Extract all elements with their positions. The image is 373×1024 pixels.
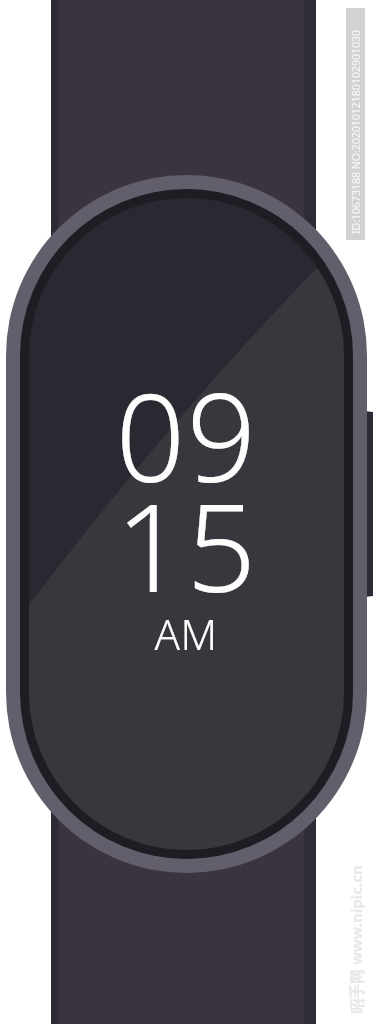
button[interactable]: Smart band watch face showing 09:15 AM	[0, 0, 373, 1024]
